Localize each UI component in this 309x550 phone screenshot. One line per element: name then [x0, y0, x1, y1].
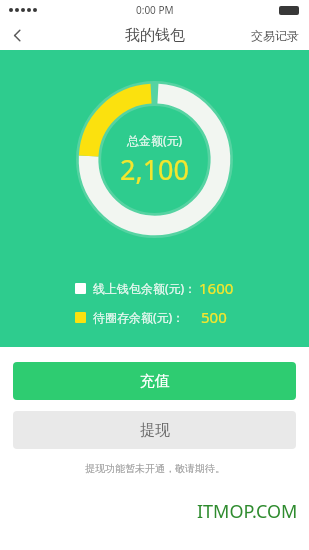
button[interactable]: 提现 — [13, 411, 296, 449]
staticText: 500 — [201, 307, 227, 327]
staticText: 2,100 — [120, 151, 190, 188]
staticText: 总金额(元) — [127, 132, 183, 148]
staticText: 提现 — [140, 421, 170, 440]
button[interactable]: Back — [0, 20, 34, 50]
staticText: 交易记录 — [251, 28, 299, 43]
staticText: ITMOP.COM — [197, 499, 298, 524]
staticText: 1600 — [199, 278, 234, 298]
staticText: 提现功能暂未开通，敬请期待。 — [85, 462, 225, 475]
staticText: 线上钱包余额(元)： — [93, 280, 197, 296]
staticText: 0:00 PM — [136, 3, 174, 17]
staticText: 充值 — [140, 372, 170, 391]
staticText: 待圈存余额(元)： — [93, 309, 185, 325]
button[interactable]: 充值 — [13, 362, 296, 400]
button[interactable]: 交易记录 — [241, 22, 309, 49]
staticText: 我的钱包 — [125, 26, 185, 45]
